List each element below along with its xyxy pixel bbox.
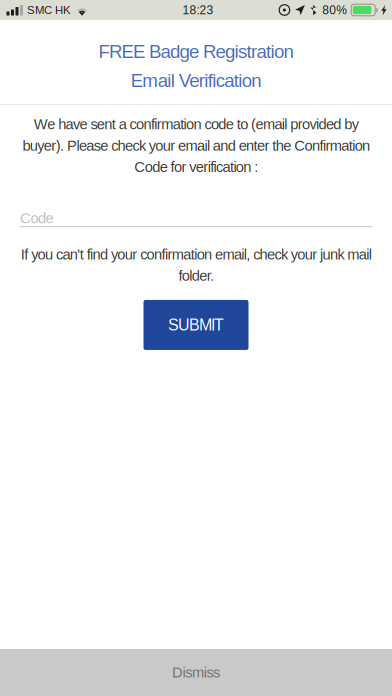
staticText: SUBMIT <box>168 316 224 334</box>
staticText: Email Verification <box>131 70 261 91</box>
staticText: SMC HK <box>27 4 71 16</box>
staticText: If you can't find your confirmation emai… <box>20 246 371 284</box>
staticText: FREE Badge Registration <box>98 41 293 62</box>
staticText: 80% <box>322 3 347 17</box>
staticText: 18:23 <box>182 3 213 17</box>
staticText: Code <box>20 210 53 226</box>
staticText: We have sent a confirmation code to (ema… <box>22 116 370 175</box>
button[interactable]: SUBMIT <box>143 300 248 350</box>
staticText: Dismiss <box>172 664 220 681</box>
button[interactable]: Dismiss <box>0 649 392 696</box>
